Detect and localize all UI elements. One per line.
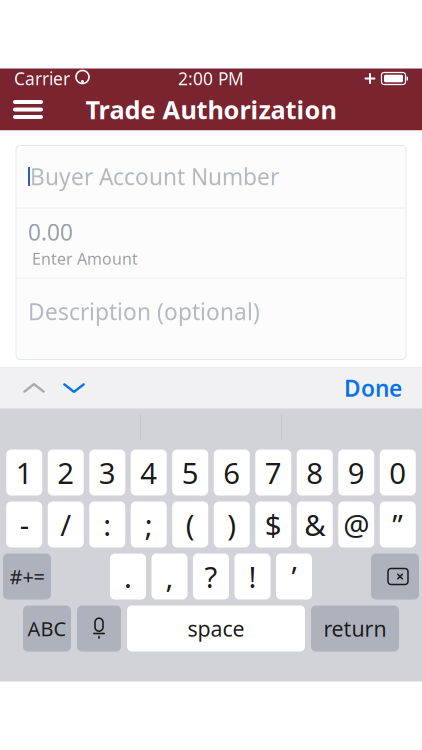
button[interactable]: ,	[151, 553, 187, 599]
staticText: (	[186, 505, 195, 544]
staticText: 7	[265, 453, 282, 492]
staticText: &	[304, 505, 325, 544]
staticText: ’	[291, 557, 296, 596]
button[interactable]: -	[6, 501, 42, 547]
button[interactable]: $	[255, 501, 291, 547]
staticText: 5	[182, 453, 199, 492]
staticText: 1	[16, 453, 33, 492]
button[interactable]: /	[48, 501, 84, 547]
staticText: /	[60, 505, 71, 544]
button[interactable]: ”	[380, 501, 416, 547]
button[interactable]: space	[127, 605, 305, 651]
staticText: 9	[348, 453, 365, 492]
staticText: ?	[204, 557, 217, 596]
staticText: Enter Amount	[32, 248, 138, 269]
button[interactable]: &	[297, 501, 333, 547]
button[interactable]: 6	[214, 449, 250, 495]
staticText: 3	[99, 453, 116, 492]
button[interactable]: Done	[338, 369, 408, 407]
staticText: Trade Authorization	[85, 93, 336, 126]
button[interactable]: 9	[338, 449, 374, 495]
button[interactable]: (	[172, 501, 208, 547]
staticText: -	[20, 505, 29, 544]
button[interactable]: 4	[131, 449, 167, 495]
staticText: Buyer Account Number	[30, 161, 279, 191]
button[interactable]: return	[311, 605, 399, 651]
button[interactable]: 2	[48, 449, 84, 495]
button[interactable]: Next field	[54, 369, 94, 407]
button[interactable]: !	[234, 553, 270, 599]
button[interactable]: #+=	[3, 553, 51, 599]
staticText: 0.00	[28, 217, 73, 247]
staticText: $	[265, 505, 282, 544]
button[interactable]: Delete	[371, 553, 419, 599]
button[interactable]: Menu	[0, 88, 56, 130]
button[interactable]: 5	[172, 449, 208, 495]
staticText: Done	[344, 373, 402, 403]
button[interactable]: ABC	[23, 605, 71, 651]
button[interactable]: 1	[6, 449, 42, 495]
button[interactable]: 7	[255, 449, 291, 495]
button[interactable]: )	[214, 501, 250, 547]
button[interactable]: 8	[297, 449, 333, 495]
staticText: .	[124, 557, 132, 596]
staticText: return	[323, 614, 386, 643]
button[interactable]: 3	[89, 449, 125, 495]
staticText: @	[343, 505, 369, 544]
staticText: #+=	[9, 563, 44, 590]
staticText: 4	[140, 453, 157, 492]
staticText: Description (optional)	[28, 296, 260, 327]
staticText: ,	[165, 557, 173, 596]
staticText: Carrier	[14, 67, 70, 90]
staticText: ABC	[27, 615, 66, 642]
staticText: 2:00 PM	[178, 67, 244, 90]
staticText: ;	[145, 505, 153, 544]
button[interactable]: 0	[380, 449, 416, 495]
staticText: ”	[392, 505, 403, 544]
staticText: :	[103, 505, 111, 544]
button[interactable]: Dictate	[77, 605, 121, 651]
button[interactable]: Previous field	[14, 369, 54, 407]
staticText: space	[187, 614, 244, 643]
staticText: 2	[57, 453, 74, 492]
button[interactable]: .	[110, 553, 146, 599]
button[interactable]: :	[89, 501, 125, 547]
button[interactable]: ;	[131, 501, 167, 547]
button[interactable]: @	[338, 501, 374, 547]
staticText: 8	[306, 453, 323, 492]
staticText: )	[227, 505, 236, 544]
button[interactable]: ’	[276, 553, 312, 599]
button[interactable]: ?	[193, 553, 229, 599]
staticText: !	[248, 557, 256, 596]
staticText: 0	[389, 453, 406, 492]
staticText: 6	[223, 453, 240, 492]
